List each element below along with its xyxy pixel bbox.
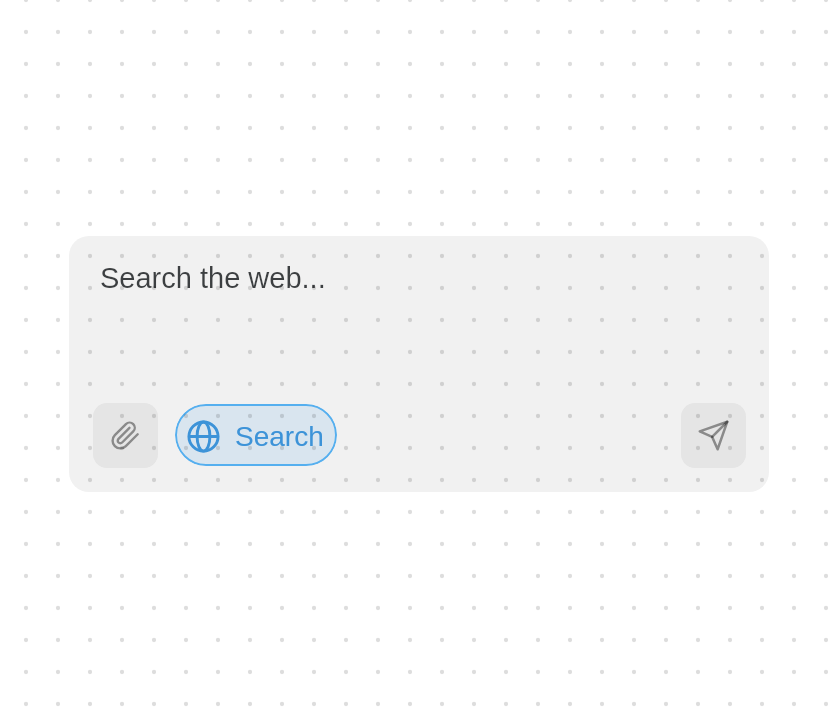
button[interactable]: Search the web... (87, 247, 751, 387)
button[interactable]: Send (681, 403, 746, 468)
staticText: Search the web... (100, 262, 326, 294)
staticText: Search (235, 421, 324, 452)
button[interactable]: Attach file (93, 403, 158, 468)
button[interactable]: Search (175, 404, 337, 466)
